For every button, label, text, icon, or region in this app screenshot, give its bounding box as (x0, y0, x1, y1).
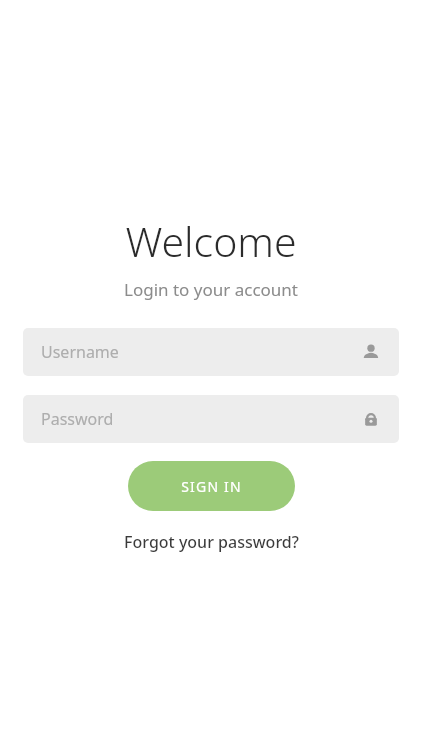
button[interactable]: SIGN IN (128, 461, 295, 511)
button[interactable]: Password (23, 395, 399, 443)
other: Username (361, 342, 381, 362)
staticText: Password (41, 408, 114, 430)
staticText: Welcome (125, 213, 297, 269)
staticText: Login to your account (124, 278, 298, 301)
staticText: Forgot your password? (124, 531, 299, 553)
staticText: Username (41, 341, 119, 363)
staticText: SIGN IN (181, 477, 242, 496)
other: Password (361, 409, 381, 429)
button[interactable]: Username (23, 328, 399, 376)
button[interactable]: Forgot your password? (116, 527, 307, 557)
